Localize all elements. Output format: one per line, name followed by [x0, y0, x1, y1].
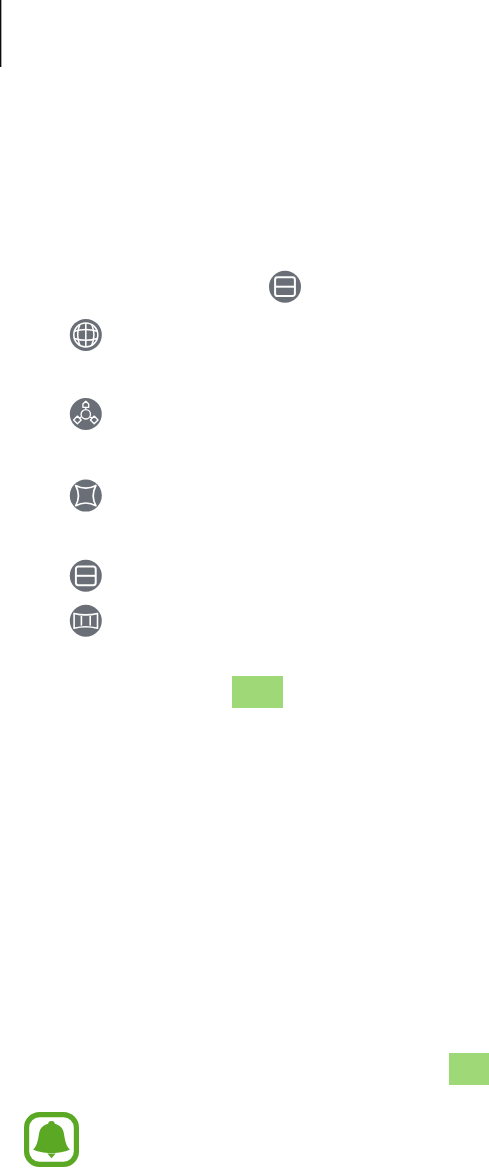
button[interactable]: Split screen — [269, 271, 301, 303]
button[interactable]: Language — [70, 319, 102, 351]
button[interactable]: Fit to screen — [70, 480, 102, 512]
button[interactable]: Split screen view — [70, 560, 102, 592]
button[interactable]: Notifications — [24, 1112, 79, 1167]
button[interactable]: Panorama — [70, 605, 102, 637]
button[interactable]: Connections — [70, 398, 102, 430]
